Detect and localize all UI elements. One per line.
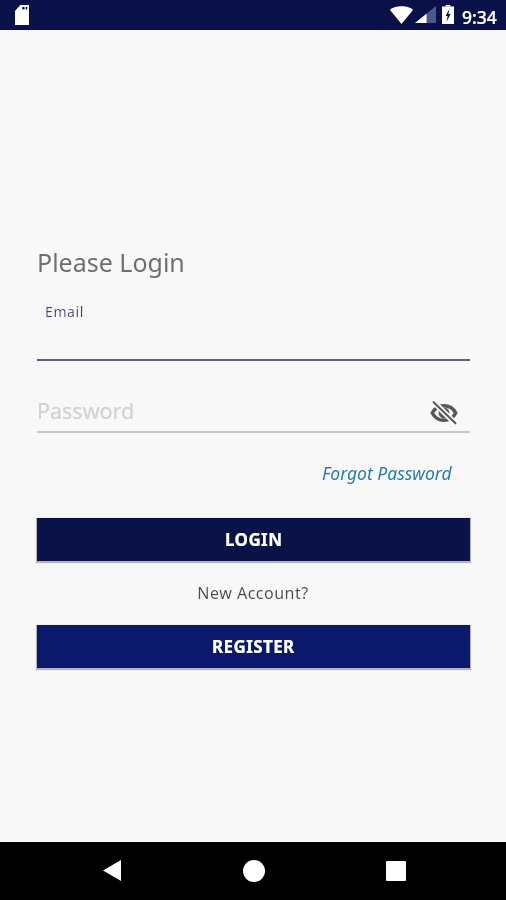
button[interactable]: REGISTER (37, 625, 470, 668)
staticText: REGISTER (212, 635, 295, 658)
button[interactable]: Show password (428, 396, 460, 428)
button[interactable]: Home (230, 847, 278, 895)
button[interactable]: Forgot Password (322, 461, 452, 485)
staticText: Please Login (37, 245, 185, 279)
button[interactable]: LOGIN (37, 518, 470, 561)
staticText: Forgot Password (322, 461, 452, 485)
button[interactable]: Recent apps (372, 847, 420, 895)
staticText: Email (45, 302, 84, 321)
button[interactable]: Back (88, 846, 136, 894)
staticText: New Account? (0, 582, 506, 604)
staticText: Password (37, 396, 135, 425)
staticText: LOGIN (225, 528, 283, 551)
staticText: 9:34 (462, 5, 497, 29)
